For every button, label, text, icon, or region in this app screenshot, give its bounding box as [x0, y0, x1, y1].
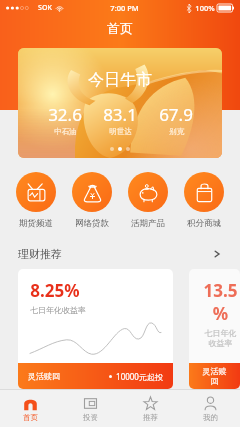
staticText: 投资 — [83, 413, 98, 422]
staticText: 理财推荐 — [18, 247, 62, 261]
button[interactable]: 期货频道 — [14, 172, 58, 229]
staticText: 7:00 PM — [110, 3, 139, 13]
other: More recommendations — [212, 249, 222, 259]
button[interactable]: 推荐 — [120, 390, 180, 427]
staticText: 活期产品 — [131, 218, 165, 229]
staticText: 83.1 — [103, 103, 137, 126]
button[interactable]: 今日牛市 — [18, 48, 222, 158]
staticText: 13.5% — [201, 279, 240, 325]
staticText: 67.9 — [159, 103, 193, 126]
staticText: 别克 — [169, 127, 184, 136]
staticText: 网络贷款 — [75, 218, 109, 229]
staticText: SOK — [38, 3, 52, 13]
staticText: 灵活赎回 — [28, 371, 60, 381]
staticText: 中石油 — [54, 127, 77, 136]
button[interactable]: 网络贷款 — [70, 172, 114, 229]
staticText: 32.6 — [48, 103, 82, 126]
button[interactable]: 活期产品 — [126, 172, 170, 229]
staticText: 今日牛市 — [88, 70, 152, 90]
staticText: 首页 — [23, 413, 38, 422]
staticText: 8.25% — [30, 279, 80, 302]
staticText: 推荐 — [143, 413, 158, 422]
staticText: 首页 — [107, 20, 133, 36]
button[interactable]: 13.5% — [189, 269, 240, 389]
button[interactable]: 积分商城 — [182, 172, 226, 229]
button[interactable]: 投资 — [60, 390, 120, 427]
staticText: 灵活赎回 — [199, 366, 230, 386]
staticText: 100% — [195, 3, 215, 13]
staticText: 我的 — [203, 413, 218, 422]
button[interactable]: 8.25% — [18, 269, 173, 389]
staticText: 明世达 — [109, 127, 132, 136]
staticText: 积分商城 — [187, 218, 221, 229]
staticText: 10000元起投 — [116, 371, 163, 382]
button[interactable]: 理财推荐 — [0, 247, 240, 261]
staticText: 期货频道 — [19, 218, 53, 229]
staticText: 七日年化收益率 — [30, 305, 86, 315]
button[interactable]: 首页 — [0, 390, 60, 427]
button[interactable]: 我的 — [180, 390, 240, 427]
staticText: 七日年化收益率 — [201, 328, 240, 348]
